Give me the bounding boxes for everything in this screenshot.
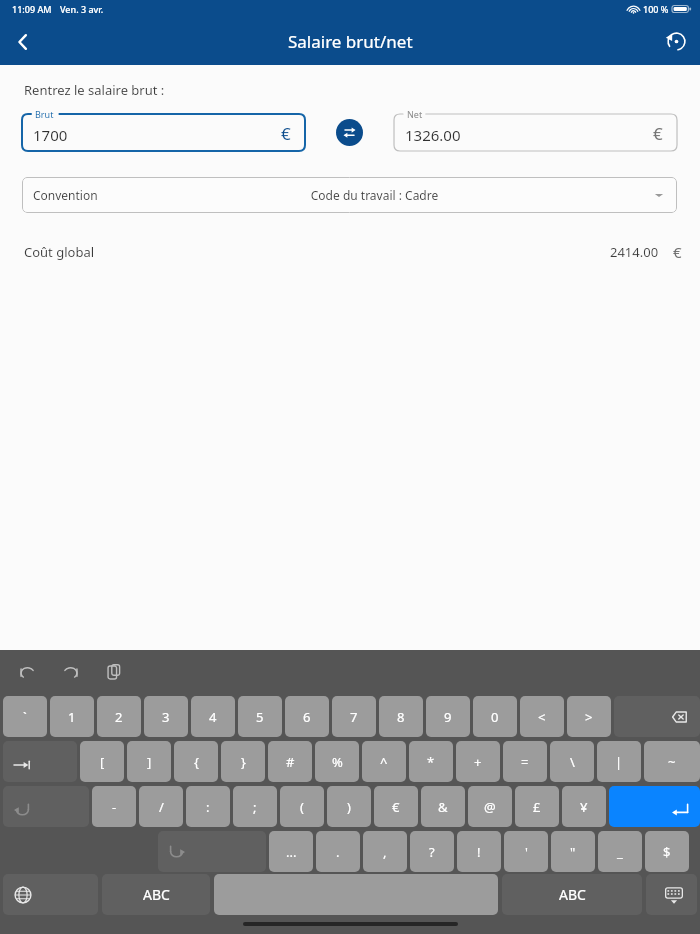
button[interactable]: ~ <box>644 741 700 782</box>
button[interactable]: tab <box>3 741 77 782</box>
staticText: Ven. 3 avr. <box>60 3 104 15</box>
staticText: ; <box>253 798 257 816</box>
button[interactable]: ret <box>609 786 700 827</box>
staticText: 3 <box>162 708 170 726</box>
button[interactable]: bksp <box>614 696 700 737</box>
button[interactable]: ! <box>457 831 501 872</box>
button[interactable]: Net <box>394 114 677 151</box>
button[interactable]: 5 <box>238 696 282 737</box>
staticText: * <box>427 753 435 771</box>
button[interactable]: = <box>503 741 547 782</box>
button[interactable]: ; <box>233 786 277 827</box>
staticText: \ <box>570 753 575 771</box>
staticText: ] <box>147 753 152 771</box>
staticText: = <box>521 753 529 771</box>
button[interactable]: , <box>363 831 407 872</box>
staticText: ... <box>286 843 297 861</box>
staticText: € <box>392 798 400 816</box>
button[interactable]: ABC <box>502 874 642 915</box>
button[interactable]: 9 <box>426 696 470 737</box>
staticText: > <box>585 708 593 726</box>
button[interactable]: : <box>186 786 230 827</box>
staticText: Convention <box>33 187 98 203</box>
button[interactable]: < <box>520 696 564 737</box>
button[interactable]: 1 <box>50 696 94 737</box>
button[interactable]: Brut <box>22 114 305 151</box>
button[interactable]: ABC <box>102 874 210 915</box>
button[interactable]: shift2 <box>158 831 266 872</box>
staticText: 9 <box>444 708 452 726</box>
button[interactable]: Swap brut and net <box>336 119 363 146</box>
button[interactable]: 8 <box>379 696 423 737</box>
button[interactable]: ] <box>127 741 171 782</box>
staticText: # <box>286 753 295 771</box>
button[interactable]: 0 <box>473 696 517 737</box>
staticText: 7 <box>350 708 358 726</box>
button[interactable]: 2 <box>97 696 141 737</box>
button[interactable]: } <box>221 741 265 782</box>
button[interactable]: globe <box>3 874 98 915</box>
button[interactable]: kbd <box>646 874 697 915</box>
button[interactable]: & <box>421 786 465 827</box>
button[interactable]: _ <box>598 831 642 872</box>
staticText: 5 <box>256 708 264 726</box>
button[interactable]: * <box>409 741 453 782</box>
button[interactable]: % <box>315 741 359 782</box>
staticText: ~ <box>668 753 676 771</box>
staticText: | <box>615 753 623 771</box>
button[interactable]: History <box>652 18 700 65</box>
button[interactable]: > <box>567 696 611 737</box>
button[interactable]: undo <box>14 659 40 685</box>
button[interactable]: paste <box>100 659 126 685</box>
staticText: 100 % <box>643 3 669 15</box>
staticText: 1 <box>68 708 76 726</box>
button[interactable]: + <box>456 741 500 782</box>
button[interactable]: Convention <box>22 177 677 213</box>
button[interactable]: ` <box>3 696 47 737</box>
button[interactable]: ) <box>327 786 371 827</box>
button[interactable]: shift <box>3 786 89 827</box>
button[interactable]: 4 <box>191 696 235 737</box>
staticText: Salaire brut/net <box>288 30 413 53</box>
staticText: ! <box>477 843 481 861</box>
button[interactable]: redo <box>57 659 83 685</box>
button[interactable]: £ <box>515 786 559 827</box>
button[interactable]: { <box>174 741 218 782</box>
button[interactable]: ¥ <box>562 786 606 827</box>
staticText: Rentrez le salaire brut : <box>24 81 165 99</box>
staticText: 2 <box>115 708 123 726</box>
staticText: & <box>438 798 448 816</box>
staticText: " <box>570 843 576 861</box>
button[interactable]: 3 <box>144 696 188 737</box>
staticText: Code du travail : Cadre <box>98 187 651 203</box>
button[interactable]: ... <box>269 831 313 872</box>
button[interactable]: | <box>597 741 641 782</box>
button[interactable]: / <box>139 786 183 827</box>
staticText: 0 <box>491 708 499 726</box>
button[interactable]: ? <box>410 831 454 872</box>
button[interactable]: @ <box>468 786 512 827</box>
button[interactable]: 7 <box>332 696 376 737</box>
button[interactable]: € <box>374 786 418 827</box>
button[interactable]: ^ <box>362 741 406 782</box>
button[interactable]: - <box>92 786 136 827</box>
button[interactable]: Back <box>0 18 46 65</box>
staticText: 8 <box>397 708 405 726</box>
staticText: . <box>336 843 340 861</box>
button[interactable]: 6 <box>285 696 329 737</box>
staticText: / <box>159 798 164 816</box>
staticText: { <box>194 753 199 771</box>
button[interactable]: " <box>551 831 595 872</box>
button[interactable]: $ <box>645 831 689 872</box>
button[interactable]: \ <box>550 741 594 782</box>
staticText: ` <box>23 708 27 726</box>
staticText: ABC <box>559 885 586 904</box>
button[interactable]: ' <box>504 831 548 872</box>
staticText: Net <box>407 108 423 120</box>
button[interactable]: [ <box>80 741 124 782</box>
button[interactable]: . <box>316 831 360 872</box>
staticText: @ <box>484 798 496 816</box>
button[interactable]: # <box>268 741 312 782</box>
button[interactable]: ( <box>280 786 324 827</box>
